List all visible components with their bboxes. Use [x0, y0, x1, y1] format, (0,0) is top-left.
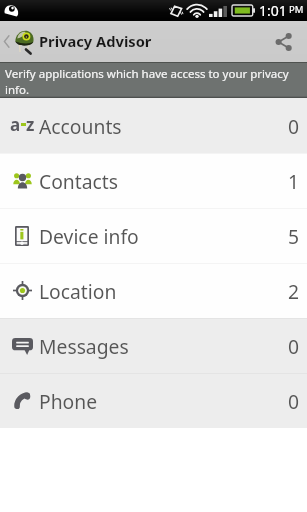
- staticText: 1:01: [259, 1, 287, 20]
- staticText: Contacts: [39, 168, 119, 194]
- button[interactable]: Messages: [0, 318, 307, 373]
- staticText: Privacy Advisor: [39, 31, 152, 51]
- staticText: 1: [288, 168, 300, 194]
- staticText: 0: [288, 113, 300, 139]
- staticText: Phone: [39, 388, 98, 414]
- staticText: z: [26, 113, 35, 136]
- button[interactable]: Share: [263, 21, 307, 62]
- staticText: 2: [288, 278, 300, 304]
- button[interactable]: Phone: [0, 373, 307, 428]
- staticText: 0: [288, 333, 300, 359]
- staticText: Verify applications which have access to…: [5, 66, 297, 97]
- button[interactable]: Up: [0, 29, 31, 54]
- staticText: Accounts: [39, 113, 122, 139]
- staticText: 0: [288, 388, 300, 414]
- button[interactable]: Device info: [0, 208, 307, 263]
- button[interactable]: Location: [0, 263, 307, 318]
- staticText: Messages: [39, 333, 129, 359]
- staticText: PM: [289, 3, 304, 16]
- button[interactable]: a: [0, 98, 307, 153]
- staticText: Device info: [39, 223, 139, 249]
- staticText: 5: [288, 223, 300, 249]
- staticText: Location: [39, 278, 117, 304]
- staticText: a: [10, 113, 21, 136]
- button[interactable]: Contacts: [0, 153, 307, 208]
